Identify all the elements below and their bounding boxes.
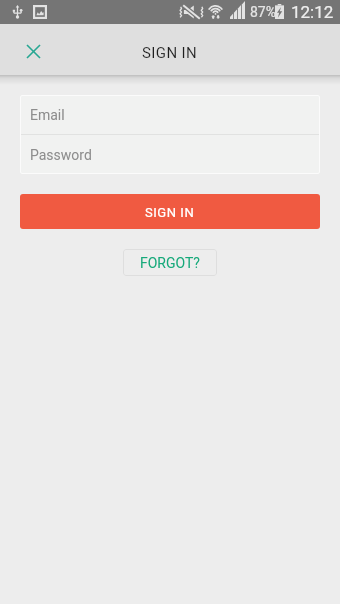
staticText: Email <box>30 107 65 123</box>
button[interactable]: Password <box>20 135 320 174</box>
button[interactable]: Close <box>0 24 51 75</box>
staticText: Password <box>30 147 92 163</box>
staticText: 87% <box>250 4 276 20</box>
staticText: SIGN IN <box>142 44 198 62</box>
button[interactable]: FORGOT? <box>123 249 217 276</box>
staticText: FORGOT? <box>140 255 200 271</box>
button[interactable]: SIGN IN <box>20 194 320 229</box>
button[interactable]: Email <box>20 95 320 134</box>
staticText: SIGN IN <box>145 205 195 220</box>
staticText: 12:12 <box>291 2 334 22</box>
